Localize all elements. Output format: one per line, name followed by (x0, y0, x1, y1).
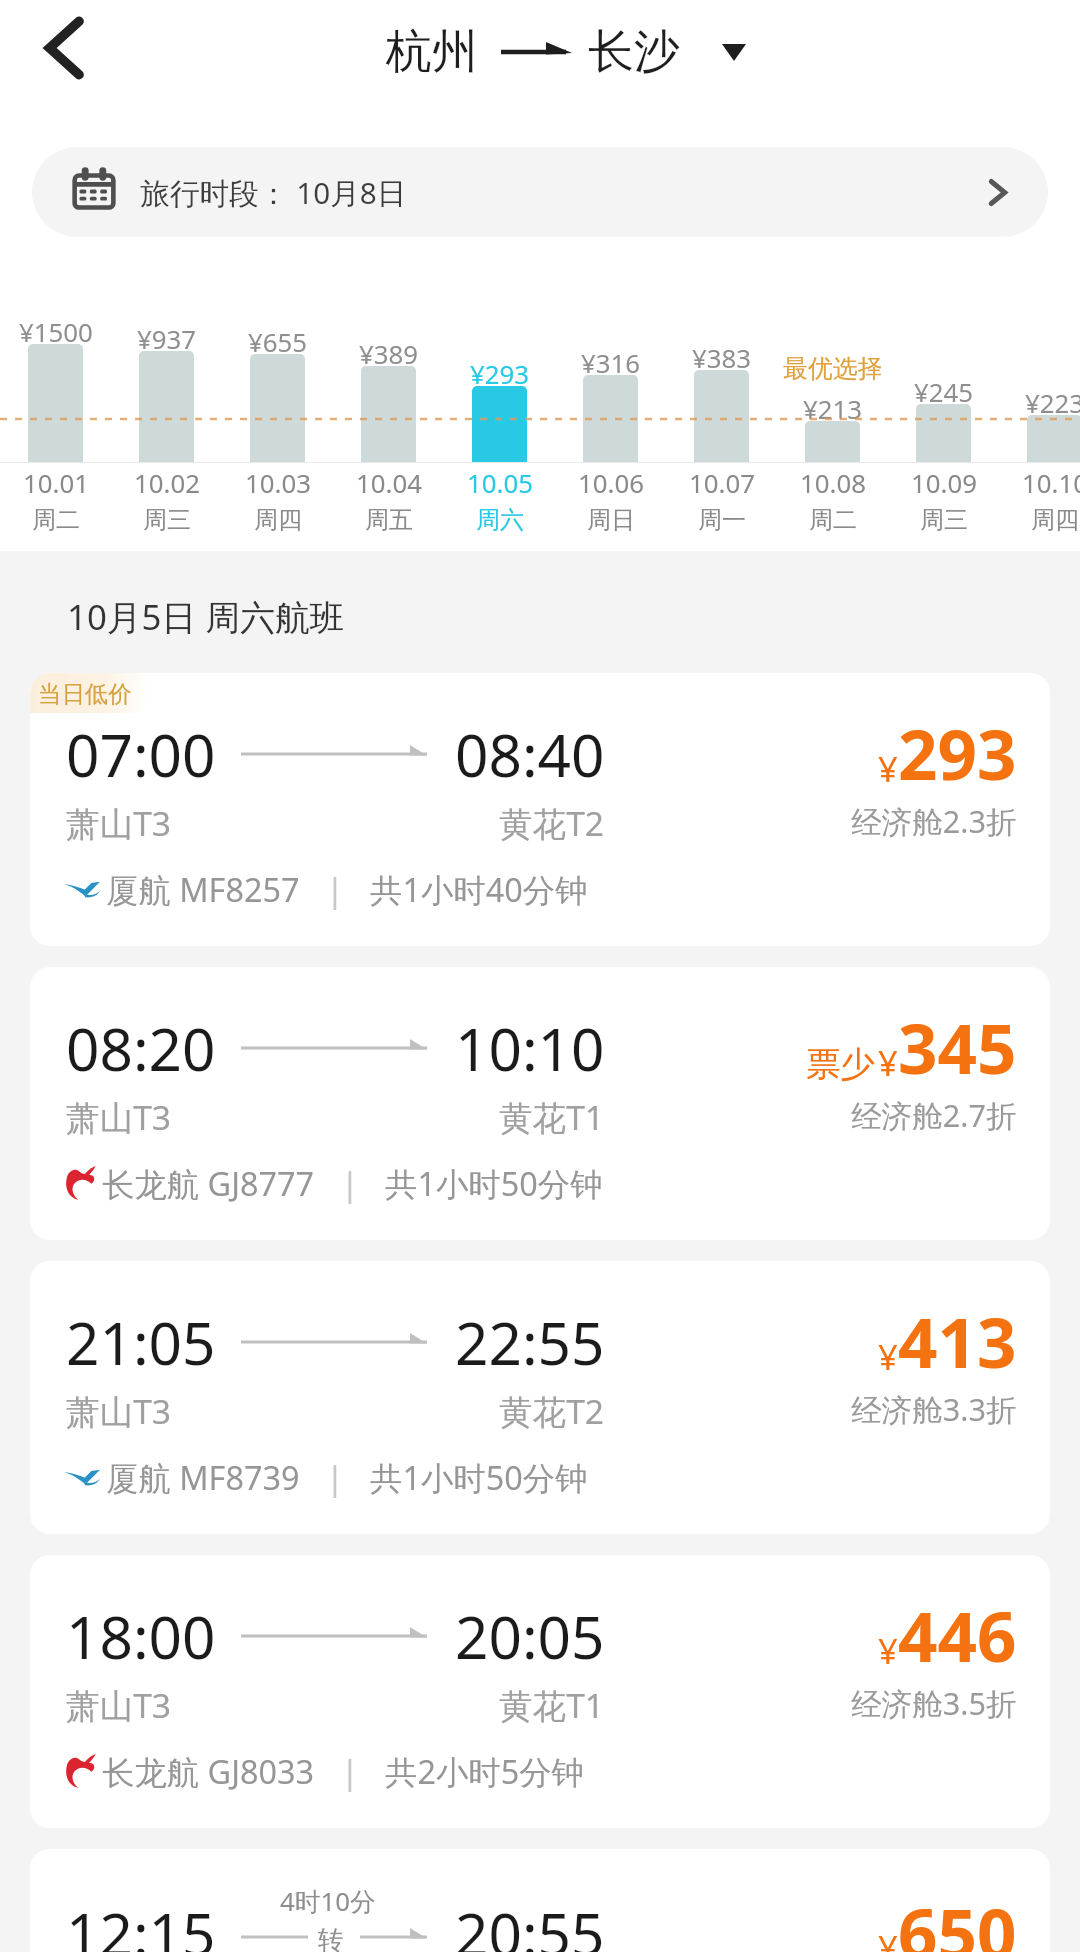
staticText: 周四 (1031, 505, 1079, 535)
button[interactable] (805, 421, 860, 462)
staticText: 21:05 (66, 1302, 216, 1382)
staticText: 20:05 (455, 1596, 605, 1676)
staticText: ¥ (878, 1333, 898, 1380)
staticText: 20:55 (455, 1893, 605, 1952)
button[interactable]: 12:15 (30, 1849, 1050, 1952)
staticText: 18:00 (66, 1596, 216, 1676)
staticText: ¥316 (581, 345, 641, 380)
staticText: 293 (898, 706, 1017, 800)
staticText: 经济舱2.3折 (851, 800, 1017, 842)
staticText: 共1小时40分钟 (370, 867, 588, 911)
button[interactable]: 21:05 (30, 1261, 1050, 1534)
staticText: 650 (898, 1885, 1017, 1952)
staticText: ¥293 (470, 356, 530, 391)
staticText: 转 (318, 1924, 344, 1952)
staticText: 周一 (698, 505, 746, 535)
staticText: 10.01 (23, 465, 89, 500)
staticText: 4时10分 (280, 1883, 376, 1918)
button[interactable]: 当日低价 (30, 673, 1050, 946)
staticText: 周三 (143, 505, 191, 535)
staticText: ¥ (878, 1924, 898, 1952)
button[interactable]: Back (26, 7, 102, 89)
staticText: 周四 (254, 505, 302, 535)
staticText: 446 (898, 1588, 1017, 1682)
staticText: 22:55 (455, 1302, 605, 1382)
button[interactable] (250, 354, 305, 462)
staticText: ¥245 (914, 374, 974, 409)
staticText: | (341, 1749, 359, 1793)
staticText: 萧山T3 (66, 1388, 172, 1434)
staticText: 10月5日 周六航班 (67, 593, 345, 641)
staticText: 萧山T3 (66, 800, 172, 846)
staticText: 黄花T2 (499, 1388, 605, 1434)
staticText: 当日低价 (38, 679, 132, 708)
staticText: 共1小时50分钟 (385, 1161, 603, 1205)
staticText: 413 (898, 1294, 1017, 1388)
staticText: 黄花T1 (499, 1094, 605, 1140)
staticText: 长龙航 GJ8033 (102, 1749, 315, 1793)
staticText: 345 (898, 1000, 1017, 1094)
staticText: 黄花T1 (499, 1682, 605, 1728)
staticText: 杭州 (386, 23, 478, 81)
staticText: 旅行时段： 10月8日 (140, 172, 407, 213)
staticText: 长沙 (588, 23, 680, 81)
button[interactable]: 旅行时段： 10月8日 (32, 147, 1048, 237)
staticText: 08:20 (66, 1008, 216, 1088)
button[interactable] (139, 351, 194, 462)
staticText: | (326, 1455, 344, 1499)
staticText: 长龙航 GJ8777 (102, 1161, 315, 1205)
staticText: 10.06 (578, 465, 644, 500)
staticText: 萧山T3 (66, 1682, 172, 1728)
staticText: 经济舱3.3折 (851, 1388, 1017, 1430)
staticText: 最优选择 (783, 353, 883, 384)
staticText: 票少 (806, 1043, 875, 1086)
staticText: 萧山T3 (66, 1094, 172, 1140)
staticText: ¥1500 (19, 314, 93, 349)
staticText: 周五 (365, 505, 413, 535)
button[interactable]: 08:20 (30, 967, 1050, 1240)
staticText: 厦航 MF8257 (106, 867, 300, 911)
staticText: 10.08 (800, 465, 866, 500)
button[interactable]: 18:00 (30, 1555, 1050, 1828)
staticText: ¥937 (137, 321, 197, 356)
staticText: 10.09 (911, 465, 977, 500)
button[interactable] (361, 366, 416, 462)
staticText: ¥ (878, 745, 898, 792)
staticText: ¥223 (1025, 385, 1080, 420)
staticText: 经济舱2.7折 (851, 1094, 1017, 1136)
staticText: 10.10 (1022, 465, 1080, 500)
staticText: 07:00 (66, 714, 216, 794)
staticText: 周三 (920, 505, 968, 535)
staticText: 周二 (809, 505, 857, 535)
button[interactable] (1027, 415, 1080, 462)
staticText: 共2小时5分钟 (385, 1749, 585, 1793)
staticText: 周日 (587, 505, 635, 535)
staticText: | (326, 867, 344, 911)
button[interactable]: 杭州 (386, 23, 746, 81)
staticText: 10.07 (689, 465, 755, 500)
staticText: 周二 (32, 505, 80, 535)
staticText: ¥213 (803, 391, 863, 426)
staticText: ¥655 (248, 324, 308, 359)
button[interactable] (472, 386, 527, 462)
staticText: 10.05 (467, 465, 533, 500)
staticText: 周六 (476, 505, 524, 535)
button[interactable] (28, 344, 83, 462)
staticText: 共1小时50分钟 (370, 1455, 588, 1499)
button[interactable] (694, 370, 749, 462)
staticText: 10.04 (356, 465, 422, 500)
staticText: ¥ (878, 1627, 898, 1674)
staticText: 黄花T2 (499, 800, 605, 846)
staticText: | (341, 1161, 359, 1205)
button[interactable] (916, 404, 971, 462)
staticText: ¥389 (359, 336, 419, 371)
staticText: 12:15 (66, 1893, 216, 1952)
staticText: 08:40 (455, 714, 605, 794)
staticText: ¥ (878, 1039, 898, 1086)
staticText: 经济舱3.5折 (851, 1682, 1017, 1724)
staticText: 10:10 (455, 1008, 605, 1088)
staticText: ¥383 (692, 340, 752, 375)
staticText: 10.02 (134, 465, 200, 500)
button[interactable] (583, 375, 638, 462)
staticText: 厦航 MF8739 (106, 1455, 300, 1499)
